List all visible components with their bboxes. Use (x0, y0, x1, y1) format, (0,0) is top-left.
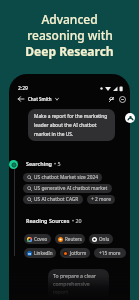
staticText: Make a report for the marketing leader a… (34, 113, 109, 137)
button[interactable]: Chat Smith (28, 96, 59, 102)
staticText: To prepare a clear comprehensive report (53, 273, 104, 295)
staticText: • 5 (54, 160, 61, 167)
button[interactable]: To prepare a clear comprehensive report (48, 269, 109, 300)
button[interactable]: Profile (125, 113, 135, 123)
staticText: + 2 more (91, 196, 111, 203)
staticText: LinkedIn (34, 250, 53, 256)
staticText: Reading Sources (26, 217, 70, 224)
staticText: US AI chatbot CAGR (34, 196, 79, 203)
button[interactable]: Mute notifications (106, 94, 117, 105)
button[interactable]: Make a report for the marketing leader a… (28, 109, 115, 141)
button[interactable]: + 2 more (87, 195, 115, 204)
staticText: 2:29 (18, 85, 28, 92)
staticText: Coveo (34, 236, 48, 242)
button[interactable]: Back (16, 94, 26, 104)
staticText: Chat Smith (28, 96, 52, 102)
staticText: US generative AI chatbot market (34, 185, 108, 192)
button[interactable]: US AI chatbot CAGR (23, 195, 83, 204)
staticText: Onlu (99, 236, 110, 242)
button[interactable]: Onlu (89, 234, 113, 244)
button[interactable]: Jotform (60, 248, 90, 258)
staticText: Deep Research (25, 43, 114, 59)
button[interactable]: New chat (117, 94, 128, 105)
button[interactable]: US chatbot Market size 2024 (23, 173, 102, 182)
staticText: +15 more (99, 250, 121, 257)
staticText: Jotform (70, 250, 87, 256)
staticText: • 20 (72, 217, 82, 224)
staticText: Reuters (65, 236, 82, 242)
staticText: Searching (26, 160, 52, 167)
button[interactable]: Reuters (55, 234, 85, 244)
button[interactable]: LinkedIn (24, 248, 56, 258)
staticText: Advanced (41, 11, 98, 27)
button[interactable]: +15 more (94, 248, 126, 258)
staticText: reasoning with (27, 27, 113, 43)
button[interactable]: Coveo (24, 234, 51, 244)
staticText: US chatbot Market size 2024 (34, 174, 98, 181)
button[interactable]: US generative AI chatbot market (23, 184, 112, 193)
